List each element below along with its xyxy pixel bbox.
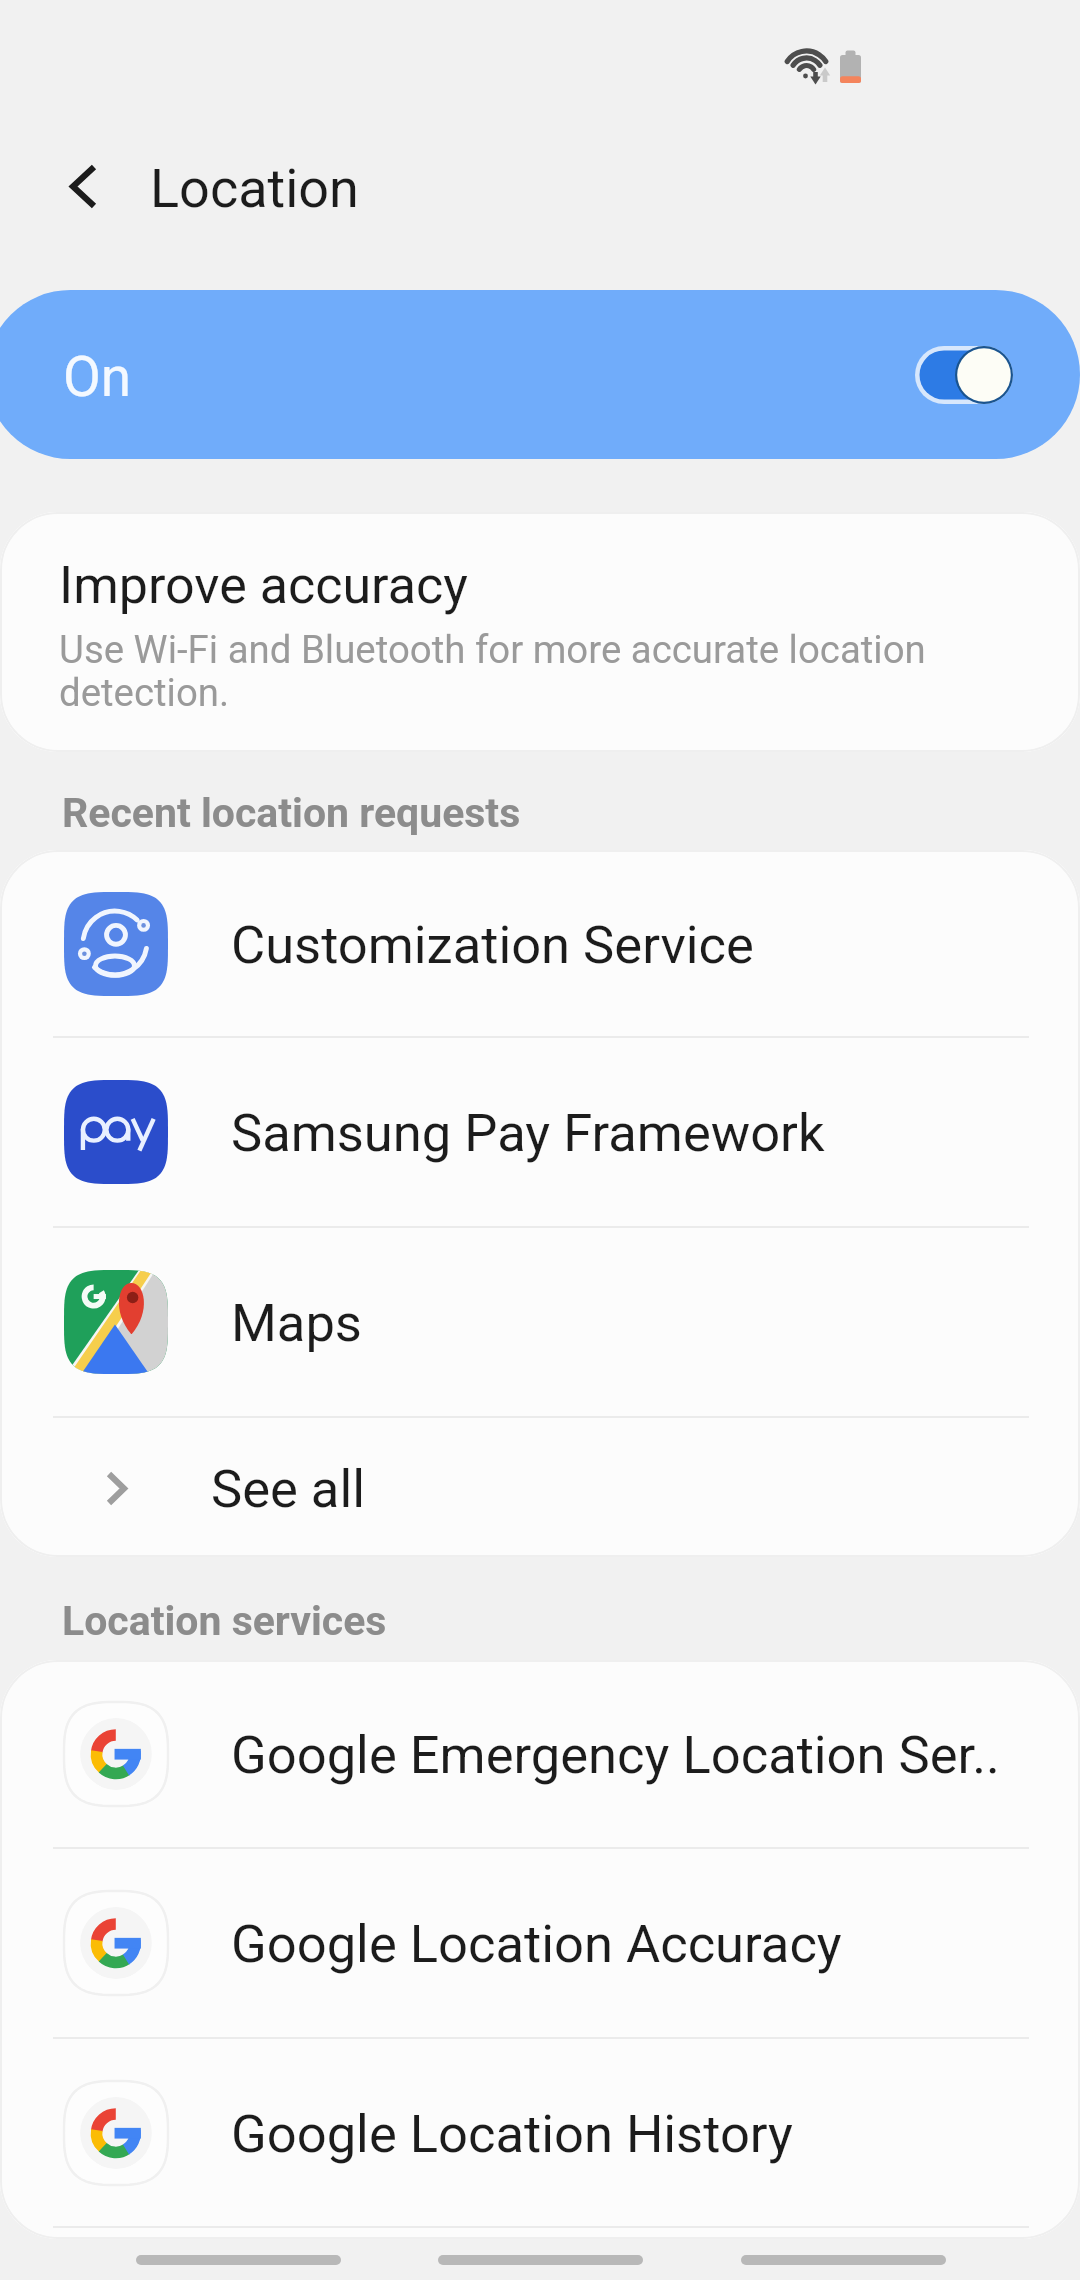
staticText: On <box>63 345 132 409</box>
button[interactable]: Customization Service <box>0 850 1080 1037</box>
staticText: See all <box>211 1458 365 1520</box>
button[interactable]: See all <box>0 1417 1080 1557</box>
staticText: Customization Service <box>231 914 754 976</box>
button[interactable]: Improve accuracy <box>0 512 1080 752</box>
staticText: Location <box>150 157 359 220</box>
staticText: Google Location History <box>231 2103 793 2165</box>
staticText: Maps <box>231 1292 362 1354</box>
staticText: Improve accuracy <box>59 555 468 616</box>
staticText: Google Location Accuracy <box>231 1913 842 1975</box>
staticText: Recent location requests <box>62 789 521 837</box>
button[interactable]: Google Emergency Location Ser.. <box>0 1660 1080 1848</box>
staticText: Use Wi-Fi and Bluetooth for more accurat… <box>59 627 926 715</box>
button[interactable]: Samsung Pay Framework <box>0 1037 1080 1227</box>
button[interactable]: Google Location History <box>0 2038 1080 2227</box>
staticText: Location services <box>62 1597 387 1645</box>
button[interactable]: Back <box>17 122 149 250</box>
staticText: Samsung Pay Framework <box>231 1102 825 1164</box>
button[interactable]: Maps <box>0 1227 1080 1417</box>
staticText: Google Emergency Location Ser.. <box>231 1724 1000 1786</box>
button[interactable]: Google Location Accuracy <box>0 1848 1080 2037</box>
button[interactable]: Location on/off switch <box>915 346 1013 404</box>
button[interactable]: On <box>0 290 1080 459</box>
